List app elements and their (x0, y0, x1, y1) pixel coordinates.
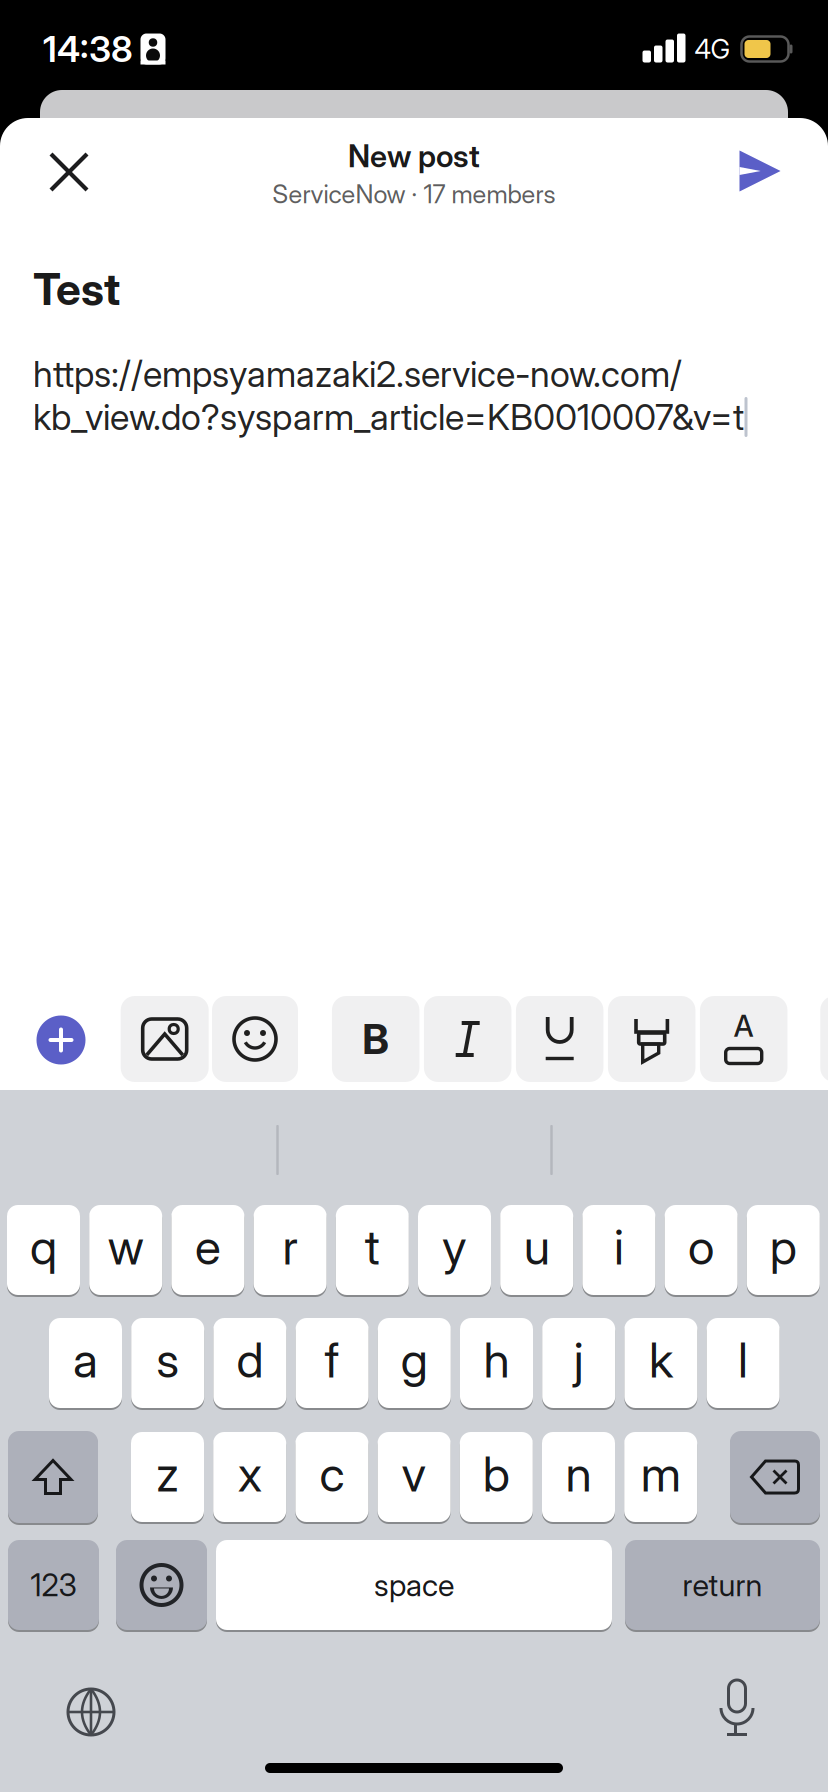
button[interactable]: Numbers (8, 1539, 99, 1631)
button[interactable]: Font color (700, 996, 787, 1082)
button[interactable]: i (582, 1204, 655, 1296)
staticText: x (238, 1446, 262, 1502)
button[interactable]: r (254, 1204, 327, 1296)
button[interactable]: o (665, 1204, 738, 1296)
button[interactable]: Send (729, 140, 790, 201)
staticText: v (402, 1446, 427, 1502)
button[interactable]: Highlight (608, 996, 695, 1082)
staticText: a (73, 1332, 98, 1388)
staticText: z (156, 1446, 179, 1502)
staticText: s (156, 1332, 179, 1388)
button[interactable]: t (336, 1204, 409, 1296)
staticText: r (283, 1219, 298, 1275)
button[interactable]: Dictation (709, 1670, 765, 1746)
staticText: e (195, 1219, 221, 1275)
button[interactable]: Close (37, 140, 101, 204)
button[interactable]: Emoji (116, 1539, 207, 1631)
button[interactable]: a (49, 1317, 122, 1409)
staticText: n (565, 1446, 591, 1502)
button[interactable]: w (89, 1204, 162, 1296)
staticText: l (738, 1332, 748, 1388)
button[interactable]: Underline (516, 996, 603, 1082)
staticText: k (649, 1332, 673, 1388)
staticText: c (319, 1446, 344, 1502)
button[interactable]: e (171, 1204, 244, 1296)
staticText: t (365, 1219, 380, 1275)
button[interactable]: b (460, 1431, 533, 1523)
staticText: j (574, 1332, 584, 1388)
button[interactable]: Delete (730, 1430, 820, 1524)
button[interactable]: v (378, 1431, 451, 1523)
staticText: B (362, 1015, 389, 1063)
staticText: w (108, 1219, 144, 1275)
button[interactable]: space (216, 1539, 612, 1631)
staticText: b (483, 1446, 510, 1502)
staticText: q (30, 1219, 57, 1275)
staticText: u (524, 1219, 550, 1275)
staticText: m (641, 1446, 681, 1502)
staticText: Test (33, 263, 120, 315)
button[interactable]: z (131, 1431, 204, 1523)
button[interactable]: g (378, 1317, 451, 1409)
staticText: o (688, 1219, 714, 1275)
button[interactable]: h (460, 1317, 533, 1409)
staticText: return (682, 1567, 762, 1603)
button[interactable]: Bold (332, 996, 419, 1082)
button[interactable]: Insert image (121, 996, 209, 1082)
button[interactable]: Insert emoji (212, 996, 298, 1082)
staticText: f (325, 1332, 340, 1388)
button[interactable]: u (500, 1204, 573, 1296)
staticText: kb_view.do?sysparm_article=KB0010007&v=t (33, 396, 744, 438)
button[interactable]: j (542, 1317, 615, 1409)
staticText: h (483, 1332, 509, 1388)
staticText: i (614, 1219, 624, 1275)
button[interactable]: n (542, 1431, 615, 1523)
button[interactable]: d (213, 1317, 286, 1409)
button[interactable]: k (624, 1317, 697, 1409)
staticText: space (374, 1567, 454, 1603)
staticText: ServiceNow · 17 members (272, 179, 555, 209)
button[interactable]: p (747, 1204, 820, 1296)
staticText: p (770, 1219, 797, 1275)
staticText: https://empsyamazaki2.service-now.com/ (33, 353, 682, 395)
staticText: d (236, 1332, 263, 1388)
button[interactable]: c (295, 1431, 368, 1523)
staticText: g (401, 1332, 428, 1388)
button[interactable]: y (418, 1204, 491, 1296)
button[interactable]: return (625, 1539, 820, 1631)
button[interactable]: Next keyboard (60, 1681, 122, 1743)
button[interactable]: m (624, 1431, 697, 1523)
button[interactable]: More options (36, 1015, 85, 1064)
button[interactable]: l (707, 1317, 780, 1409)
button[interactable]: x (213, 1431, 286, 1523)
staticText: A (734, 1009, 754, 1043)
button[interactable]: Italic (424, 996, 511, 1082)
staticText: New post (348, 138, 480, 174)
staticText: 4G (694, 33, 729, 65)
staticText: 14:38 (43, 28, 133, 70)
staticText: 123 (30, 1567, 76, 1603)
button[interactable]: q (7, 1204, 80, 1296)
button[interactable]: f (296, 1317, 369, 1409)
button[interactable]: s (131, 1317, 204, 1409)
button[interactable]: Shift (8, 1430, 98, 1524)
staticText: y (442, 1219, 467, 1275)
